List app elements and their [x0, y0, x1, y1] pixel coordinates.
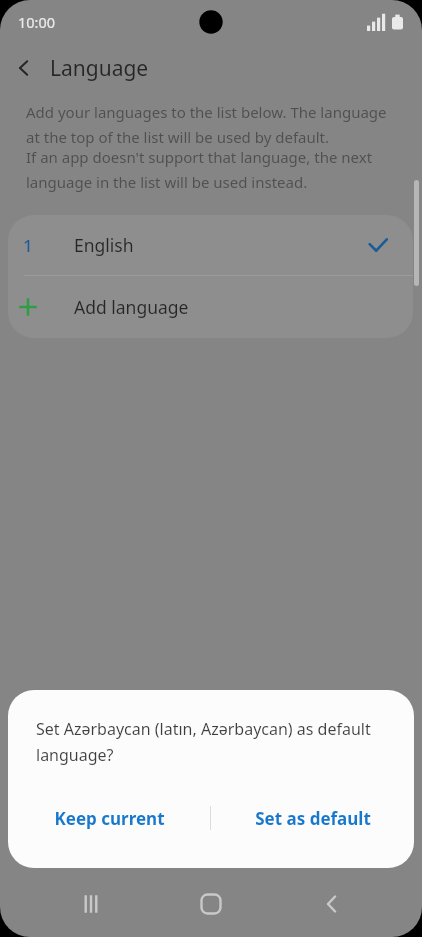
staticText: Set Azərbaycan (latın, Azərbaycan) as de…	[36, 718, 384, 766]
button[interactable]: Back	[0, 44, 48, 92]
staticText: 1	[23, 234, 33, 257]
staticText: 10:00	[18, 12, 56, 32]
button[interactable]: Set as default	[211, 790, 414, 846]
button[interactable]: Keep current	[8, 790, 210, 846]
staticText: If an app doesn't support that language,…	[26, 147, 390, 192]
staticText: Keep current	[54, 807, 165, 830]
staticText: Add your languages to the list below. Th…	[26, 102, 390, 147]
button[interactable]: Add language	[8, 276, 413, 338]
staticText: Add language	[74, 295, 189, 319]
button[interactable]: Back	[302, 874, 362, 934]
button[interactable]: Home	[181, 874, 241, 934]
staticText: English	[74, 233, 134, 257]
staticText: Set as default	[255, 807, 371, 830]
staticText: Language	[50, 54, 149, 83]
button[interactable]: Recents	[61, 874, 121, 934]
button[interactable]: 1	[8, 215, 413, 275]
